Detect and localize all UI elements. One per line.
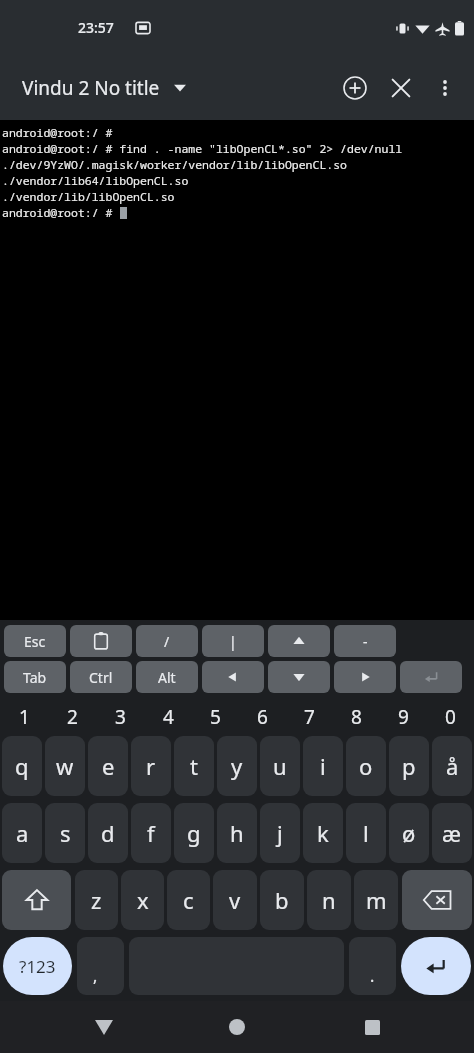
button[interactable]: Tab [4,661,66,693]
staticText: i [320,751,326,781]
button[interactable]: Down [268,661,330,693]
button[interactable]: Alt [136,661,198,693]
button[interactable]: v [213,870,257,930]
button[interactable]: æ [432,803,472,863]
button[interactable]: Shift [2,870,71,930]
staticText: 0 [445,704,456,730]
staticText: 3 [115,704,126,730]
button[interactable]: e [88,736,128,796]
button[interactable]: d [88,803,128,863]
staticText: b [275,885,289,915]
button[interactable]: y [217,736,257,796]
staticText: m [366,885,387,915]
button[interactable]: Home [213,1003,261,1051]
button[interactable]: r [131,736,171,796]
staticText: r [146,751,156,781]
button[interactable]: g [174,803,214,863]
staticText: , [93,965,98,987]
button[interactable]: - [334,625,396,657]
staticText: h [230,818,244,848]
button[interactable]: 0 [427,702,474,732]
staticText: o [359,751,373,781]
staticText: 5 [210,704,221,730]
button[interactable]: 4 [144,702,192,732]
button[interactable]: j [260,803,300,863]
button[interactable]: c [167,870,210,930]
button[interactable]: Left [202,661,264,693]
staticText: f [147,818,155,848]
staticText: 8 [351,704,362,730]
button[interactable]: Up [268,625,330,657]
staticText: 1 [19,704,30,730]
staticText: android@root:/ # [2,205,120,221]
button[interactable]: 3 [96,702,144,732]
button[interactable]: ø [389,803,429,863]
staticText: æ [442,818,462,848]
button[interactable]: Backspace [402,870,472,930]
staticText: a [16,818,29,848]
button[interactable]: android@root:/ # [0,120,474,620]
button[interactable]: Back [80,1003,128,1051]
button[interactable]: å [432,736,472,796]
button[interactable]: n [307,870,351,930]
button[interactable]: h [217,803,257,863]
button[interactable]: 5 [192,702,239,732]
button[interactable]: | [202,625,264,657]
staticText: 6 [257,704,268,730]
staticText: q [15,751,29,781]
button[interactable]: l [346,803,386,863]
button[interactable]: Vindu 2 No title [18,69,190,107]
button[interactable]: f [131,803,171,863]
button[interactable]: k [303,803,343,863]
button[interactable]: . [349,937,396,995]
button[interactable]: z [75,870,118,930]
button[interactable]: m [354,870,398,930]
button[interactable]: More options [424,67,466,109]
button[interactable]: 9 [380,702,427,732]
button[interactable]: s [45,803,85,863]
staticText: e [102,751,115,781]
button[interactable]: o [346,736,386,796]
staticText: - [363,632,368,651]
staticText: k [317,818,329,848]
staticText: ./vendor/lib/libOpenCL.so [2,189,175,205]
button[interactable]: 6 [239,702,286,732]
button[interactable]: 1 [0,702,48,732]
button[interactable]: 8 [333,702,380,732]
button[interactable]: 7 [286,702,333,732]
button[interactable]: q [2,736,42,796]
staticText: 2 [67,704,78,730]
button[interactable]: New window [332,65,378,111]
staticText: . [370,965,375,987]
button[interactable]: , [77,937,124,995]
button[interactable]: i [303,736,343,796]
button[interactable]: Enter [401,937,471,995]
button[interactable]: Esc [4,625,66,657]
staticText: t [190,751,198,781]
staticText: Vindu 2 No title [22,75,160,101]
button[interactable]: Ctrl [70,661,132,693]
staticText: ./vendor/lib64/libOpenCL.so [2,173,189,189]
button[interactable]: x [121,870,164,930]
staticText: android@root:/ # find . -name "libOpenCL… [2,141,403,157]
staticText: j [277,818,283,848]
button[interactable]: t [174,736,214,796]
button[interactable]: a [2,803,42,863]
staticText: n [322,885,336,915]
staticText: 9 [398,704,409,730]
button[interactable]: Paste [70,625,132,657]
button[interactable]: b [260,870,304,930]
button[interactable]: Right [334,661,396,693]
button[interactable]: Enter [400,661,462,693]
staticText: Ctrl [89,668,113,687]
button[interactable]: ?123 [3,937,72,995]
button[interactable]: u [260,736,300,796]
button[interactable]: w [45,736,85,796]
button[interactable]: Recents [348,1003,396,1051]
button[interactable]: p [389,736,429,796]
button[interactable]: Close [378,65,424,111]
staticText: ./dev/9YzWO/.magisk/worker/vendor/lib/li… [2,157,347,173]
button[interactable]: / [136,625,198,657]
button[interactable]: 2 [48,702,96,732]
